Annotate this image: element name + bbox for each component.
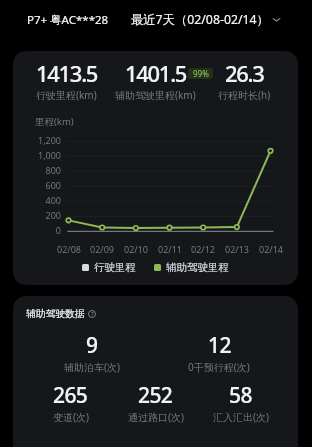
staticText: P7+ 粤AC***28 [27,12,109,28]
staticText: 辅助驾驶里程(km) [115,88,196,102]
staticText: 1413.5 [36,58,98,88]
staticText: 26.3 [225,58,264,88]
staticText: 600 [31,179,61,191]
staticText: 通过路口(次) [128,410,184,424]
staticText: 02/09 [87,243,117,255]
staticText: 02/08 [54,243,84,255]
staticText: 252 [138,381,173,410]
staticText: 02/10 [121,243,151,255]
staticText: 02/11 [155,243,185,255]
button[interactable]: 说明 [88,310,96,318]
staticText: 0干预行程(次) [188,360,250,374]
staticText: 99% [193,68,209,79]
staticText: 汇入汇出(次) [213,410,269,424]
staticText: 0 [31,224,61,236]
staticText: 里程(km) [35,115,74,128]
staticText: 02/13 [222,243,252,255]
button[interactable]: 行驶里程 [82,261,136,274]
staticText: 265 [53,381,88,410]
staticText: 行驶里程(km) [36,88,97,102]
button[interactable]: P7+ 粤AC***28 [22,6,114,34]
staticText: 辅助驾驶里程 [166,261,229,274]
staticText: 400 [31,194,61,206]
staticText: 12 [208,331,231,360]
staticText: 行程时长(h) [218,88,271,102]
staticText: 1,000 [31,149,61,161]
button[interactable]: 辅助驾驶里程 [154,261,229,274]
staticText: ? [91,310,94,318]
staticText: 58 [229,381,252,410]
staticText: 变道(次) [53,410,89,424]
staticText: 辅助泊车(次) [64,360,120,374]
staticText: 1,200 [31,134,61,146]
staticText: 辅助驾驶数据 [26,308,85,320]
button[interactable]: 辅助驾驶数据 [26,308,96,320]
staticText: 1401.5 [125,58,187,88]
staticText: 行驶里程 [94,261,136,274]
staticText: 02/12 [188,243,218,255]
button[interactable]: 最近7天（02/08-02/14） [127,5,285,34]
staticText: 800 [31,164,61,176]
staticText: 02/14 [256,243,286,255]
staticText: 最近7天（02/08-02/14） [131,11,269,28]
staticText: 200 [31,209,61,221]
staticText: 9 [86,331,98,360]
